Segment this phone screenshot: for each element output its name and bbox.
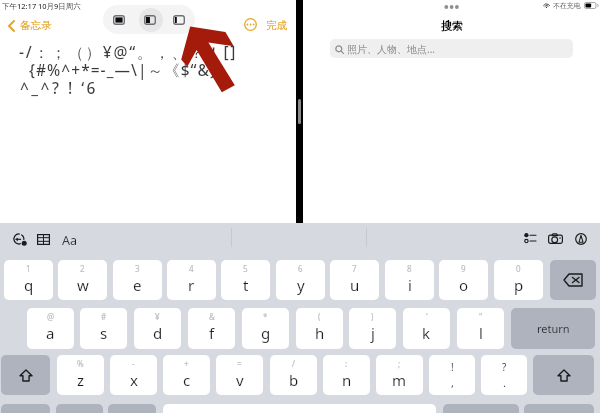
button[interactable]: Aa — [61, 231, 79, 250]
staticText: c — [183, 370, 191, 390]
button[interactable]: ! — [429, 355, 475, 395]
staticText: p — [514, 275, 524, 295]
button[interactable]: 4 — [167, 260, 216, 300]
button[interactable]: ; — [376, 355, 423, 395]
button[interactable]: Table — [37, 234, 50, 245]
button[interactable]: + — [163, 355, 210, 395]
staticText: r — [188, 275, 195, 295]
button[interactable]: 完成 — [264, 17, 289, 34]
button[interactable]: More — [243, 17, 257, 31]
button[interactable] — [108, 404, 156, 413]
button[interactable]: % — [57, 355, 104, 395]
button[interactable] — [533, 355, 594, 395]
staticText: a — [46, 323, 55, 343]
staticText: % — [77, 358, 84, 369]
staticText: w — [77, 275, 89, 295]
button[interactable]: Markup — [575, 233, 587, 245]
button[interactable]: return — [511, 308, 595, 349]
button[interactable]: @ — [27, 308, 74, 349]
button[interactable] — [56, 404, 103, 413]
button[interactable]: Undo — [13, 233, 26, 245]
button[interactable]: # — [80, 308, 127, 349]
button[interactable]: 7 — [330, 260, 379, 300]
button[interactable]: Multitasking — [444, 3, 459, 11]
staticText: 9 — [461, 263, 466, 274]
staticText: {#%^+*=-_—\|～《$“&} — [29, 59, 218, 80]
staticText: / — [292, 358, 295, 369]
button[interactable]: Full Screen — [113, 15, 125, 25]
staticText: ! — [451, 360, 454, 374]
staticText: 6 — [298, 263, 303, 274]
button[interactable]: / — [270, 355, 317, 395]
button[interactable]: 备忘录 — [5, 16, 55, 35]
staticText: z — [77, 370, 85, 390]
staticText: + — [184, 358, 189, 369]
button[interactable]: 2 — [58, 260, 107, 300]
staticText: x — [130, 370, 138, 390]
staticText: e — [133, 275, 142, 295]
staticText: y — [297, 275, 305, 295]
button[interactable]: - — [110, 355, 157, 395]
button[interactable]: ) — [349, 308, 396, 349]
staticText: u — [350, 275, 360, 295]
staticText: - — [132, 358, 135, 369]
staticText: & — [209, 311, 215, 322]
button[interactable]: 3 — [113, 260, 162, 300]
button[interactable]: * — [242, 308, 289, 349]
button[interactable] — [524, 404, 594, 413]
staticText: k — [422, 323, 431, 343]
staticText: 10月9日周六 — [38, 1, 81, 11]
button[interactable] — [1, 355, 50, 395]
staticText: 5 — [243, 263, 248, 274]
staticText: b — [289, 370, 299, 390]
button[interactable]: ( — [296, 308, 343, 349]
button[interactable]: " — [457, 308, 504, 349]
staticText: 7 — [352, 263, 357, 274]
staticText: m — [392, 370, 407, 390]
button[interactable]: 8 — [385, 260, 434, 300]
staticText: ; — [398, 358, 401, 369]
button[interactable]: ¥ — [134, 308, 181, 349]
staticText: 备忘录 — [20, 19, 52, 32]
staticText: 0 — [516, 263, 521, 274]
button[interactable]: ' — [403, 308, 450, 349]
button[interactable]: Camera — [548, 233, 563, 244]
staticText: j — [371, 323, 375, 343]
button[interactable]: 6 — [276, 260, 325, 300]
staticText: ¥ — [155, 311, 160, 322]
button[interactable]: Split View — [144, 15, 156, 25]
staticText: 2 — [80, 263, 85, 274]
staticText: q — [24, 275, 34, 295]
staticText: ( — [318, 311, 321, 322]
button[interactable]: ? — [481, 355, 527, 395]
button[interactable] — [550, 260, 596, 300]
button[interactable]: : — [323, 355, 370, 395]
staticText: 不在充电 — [553, 1, 581, 10]
staticText: ^_^? ! ‘6 — [20, 77, 98, 98]
button[interactable]: 照片、人物、地点... — [330, 39, 573, 58]
button[interactable]: Slide Over — [173, 15, 185, 25]
button[interactable] — [443, 404, 519, 413]
staticText: s — [100, 323, 108, 343]
staticText: v — [236, 370, 244, 390]
staticText: ) — [371, 311, 374, 322]
staticText: f — [209, 323, 215, 343]
staticText: o — [459, 275, 469, 295]
button[interactable]: = — [216, 355, 263, 395]
staticText: h — [315, 323, 325, 343]
button[interactable]: 5 — [221, 260, 270, 300]
button[interactable]: 9 — [439, 260, 488, 300]
button[interactable]: Checklist — [524, 233, 537, 243]
button[interactable]: 1 — [4, 260, 53, 300]
staticText: n — [342, 370, 352, 390]
staticText: 1 — [26, 263, 31, 274]
staticText: " — [479, 311, 483, 322]
button[interactable]: 0 — [494, 260, 543, 300]
staticText: 8 — [407, 263, 412, 274]
button[interactable]: & — [188, 308, 235, 349]
staticText: @ — [47, 311, 55, 322]
staticText: ? — [502, 360, 507, 374]
staticText: = — [237, 358, 242, 369]
button[interactable] — [1, 404, 50, 413]
